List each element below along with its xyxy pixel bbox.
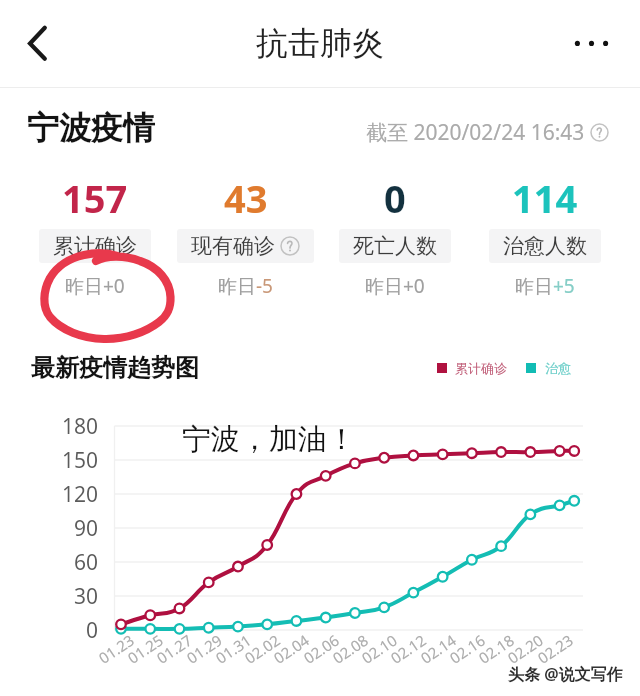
staticText: 截至 2020/02/24 16:43: [366, 118, 585, 147]
staticText: 01.29: [183, 629, 226, 668]
staticText: 昨日-5: [218, 273, 273, 299]
staticText: 治愈人数: [503, 233, 587, 259]
staticText: 01.31: [212, 629, 255, 668]
staticText: 60: [74, 548, 99, 577]
staticText: 昨日+0: [65, 273, 125, 299]
staticText: 01.27: [153, 629, 196, 668]
staticText: 0: [86, 616, 99, 645]
staticText: 01.23: [95, 629, 138, 668]
staticText: 02.18: [475, 629, 518, 668]
staticText: 02.06: [300, 629, 343, 668]
staticText: 累计确诊: [455, 360, 507, 376]
staticText: 02.02: [241, 629, 284, 668]
staticText: 02.14: [417, 629, 460, 668]
staticText: 150: [62, 446, 99, 475]
staticText: 头条 @说文写作: [508, 663, 623, 685]
staticText: 120: [62, 480, 99, 509]
button[interactable]: More options: [560, 16, 622, 72]
staticText: 治愈: [545, 360, 571, 376]
staticText: 0: [384, 172, 406, 224]
staticText: 02.23: [534, 629, 577, 668]
staticText: 抗击肺炎: [256, 23, 384, 63]
staticText: 昨日+0: [365, 273, 425, 299]
button[interactable]: Back: [8, 10, 68, 70]
staticText: 114: [512, 172, 578, 224]
staticText: 157: [62, 172, 128, 224]
staticText: 02.08: [329, 629, 372, 668]
staticText: 180: [62, 412, 99, 441]
staticText: 01.25: [124, 629, 167, 668]
staticText: 最新疫情趋势图: [31, 353, 199, 383]
staticText: 昨日+5: [515, 273, 575, 299]
staticText: 90: [74, 514, 99, 543]
staticText: 宁波，加油！: [182, 421, 356, 458]
staticText: 30: [74, 582, 99, 611]
staticText: 死亡人数: [353, 233, 437, 259]
staticText: 02.16: [446, 629, 489, 668]
staticText: 43: [224, 172, 268, 224]
staticText: 02.04: [270, 629, 313, 668]
staticText: 宁波疫情: [27, 108, 155, 148]
staticText: 02.12: [387, 629, 430, 668]
staticText: 02.10: [358, 629, 401, 668]
staticText: 02.20: [504, 629, 547, 668]
staticText: 现有确诊: [191, 233, 275, 259]
staticText: 累计确诊: [53, 233, 137, 259]
